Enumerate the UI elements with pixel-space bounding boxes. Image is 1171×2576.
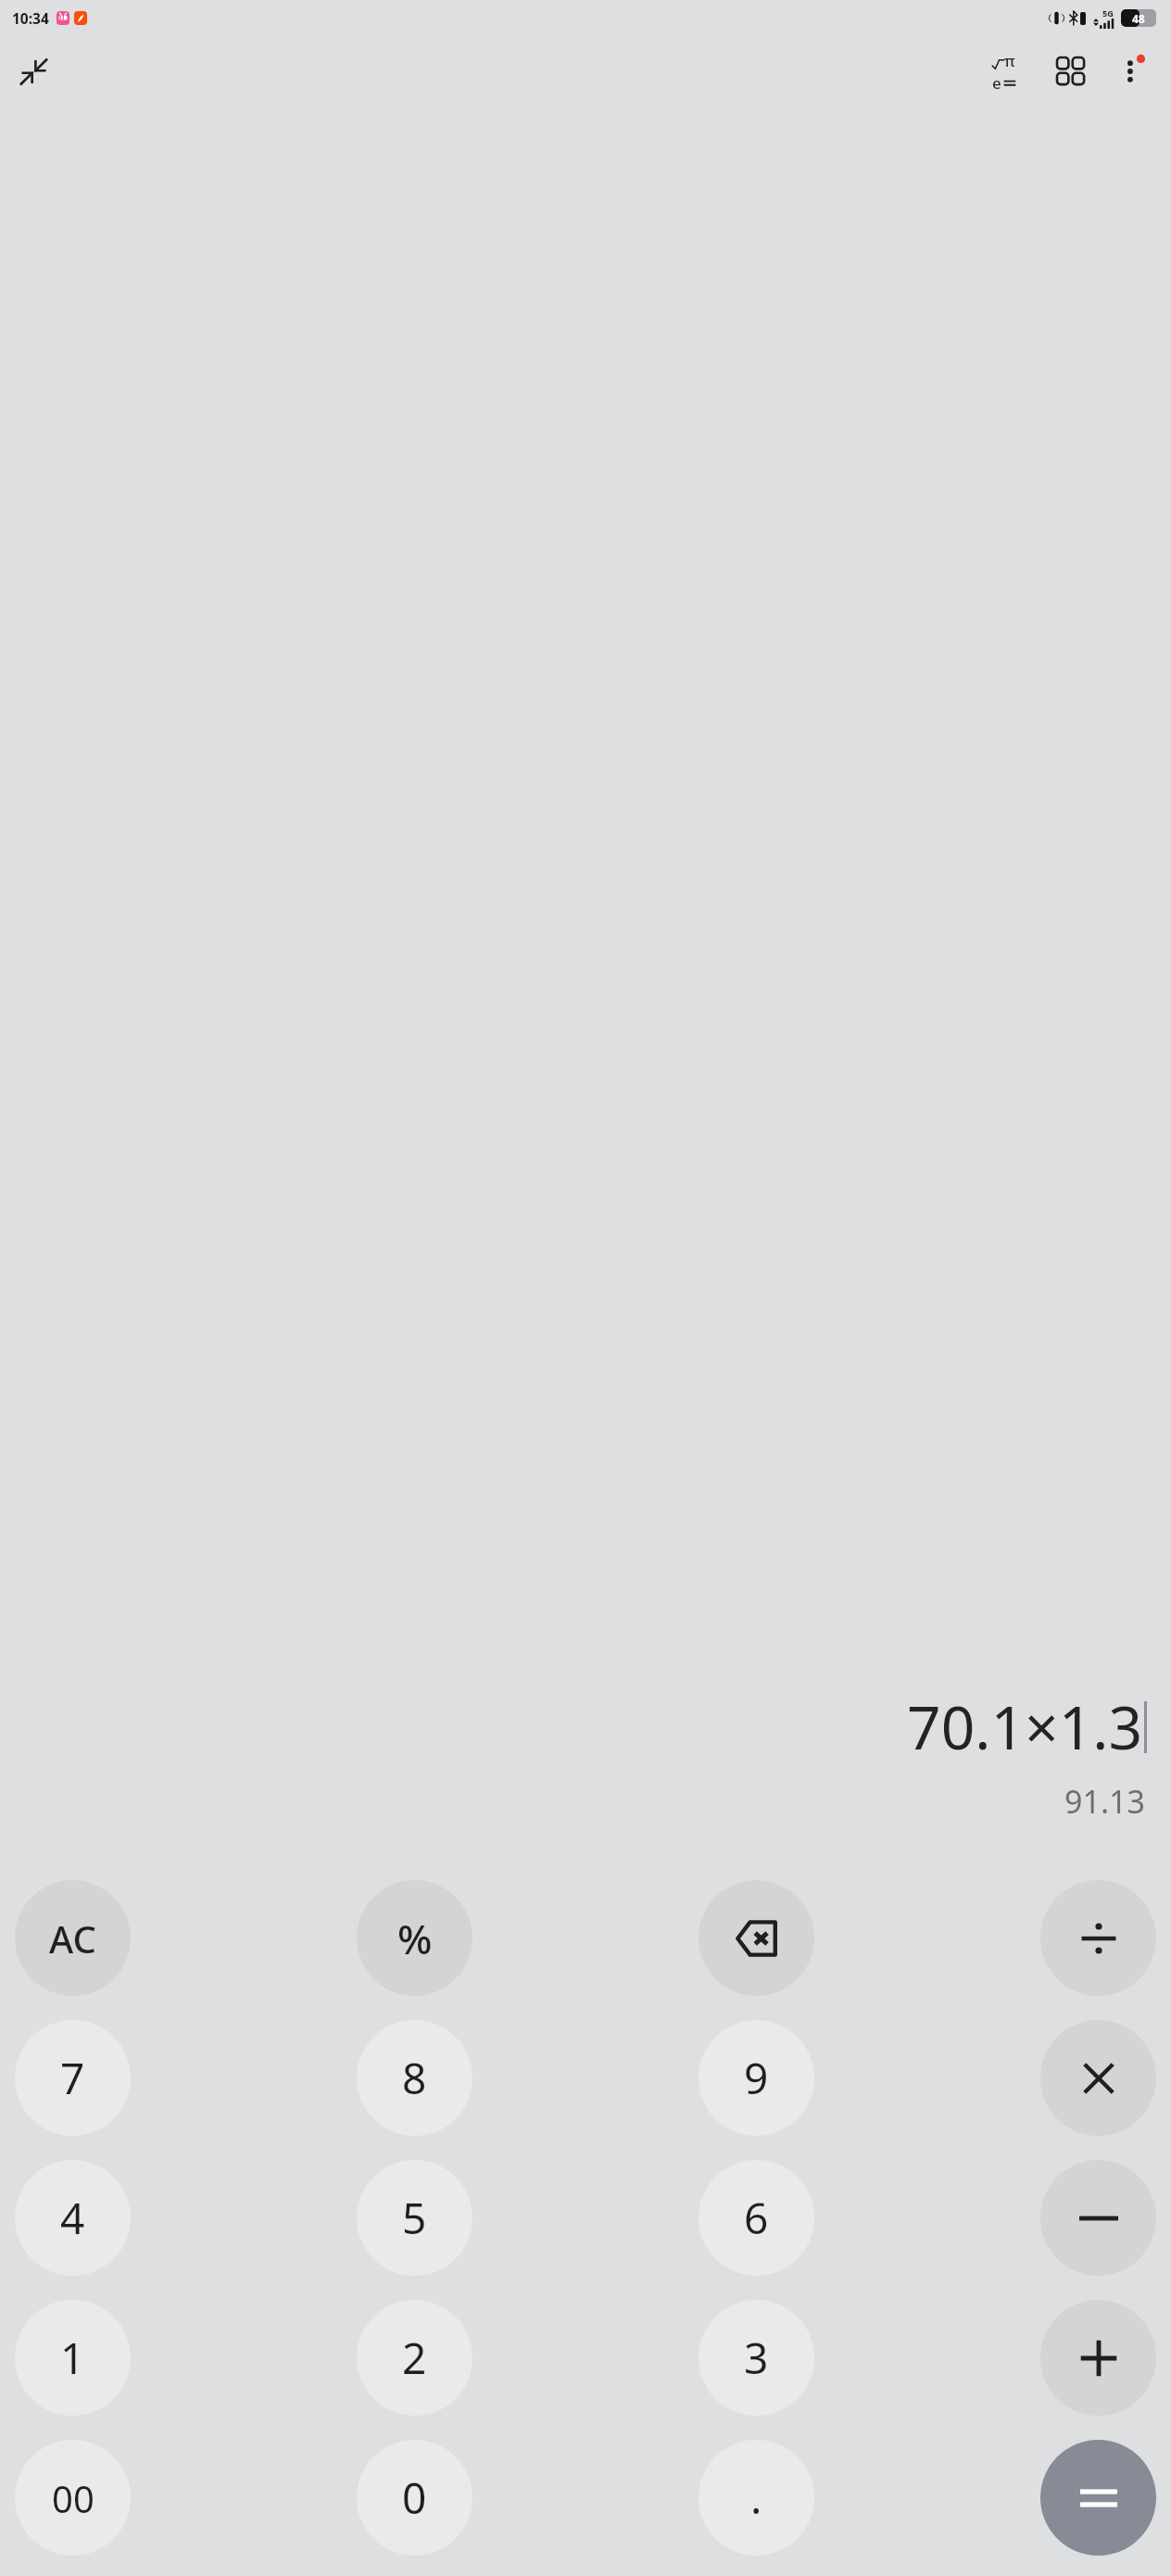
button[interactable]: Scientific mode [976, 44, 1032, 99]
button[interactable]: More options [1106, 44, 1162, 99]
staticText: 48 [1132, 11, 1145, 26]
button[interactable]: Plus [1040, 2300, 1156, 2416]
button[interactable]: 7 [15, 2020, 131, 2136]
button[interactable]: 4 [15, 2160, 131, 2276]
button[interactable]: 0 [357, 2440, 472, 2556]
button[interactable]: 00 [15, 2440, 131, 2556]
button[interactable]: Multiply [1040, 2020, 1156, 2136]
staticText: 2 [402, 2329, 427, 2387]
button[interactable]: History [1043, 44, 1099, 99]
staticText: 9 [744, 2049, 769, 2107]
staticText: 8 [402, 2049, 427, 2107]
button[interactable]: % [357, 1880, 472, 1996]
button[interactable]: 3 [699, 2300, 814, 2416]
staticText: 3 [744, 2329, 769, 2387]
staticText: 1 [60, 2329, 85, 2387]
button[interactable]: 9 [699, 2020, 814, 2136]
staticText: 0 [402, 2469, 427, 2527]
staticText: 70.1×1.3 [907, 1686, 1142, 1767]
button[interactable]: Equals [1040, 2440, 1156, 2556]
button[interactable]: 6 [699, 2160, 814, 2276]
button[interactable]: 8 [357, 2020, 472, 2136]
staticText: % [397, 1911, 433, 1966]
staticText: 5 [402, 2189, 427, 2247]
button[interactable]: Backspace [699, 1880, 814, 1996]
button[interactable]: . [699, 2440, 814, 2556]
staticText: 91.13 [1064, 1780, 1145, 1823]
button[interactable]: Divide [1040, 1880, 1156, 1996]
staticText: 4 [60, 2189, 85, 2247]
staticText: 00 [52, 2473, 94, 2523]
button[interactable]: 5 [357, 2160, 472, 2276]
staticText: 10:34 [12, 8, 49, 28]
staticText: AC [49, 1913, 96, 1964]
button[interactable]: AC [15, 1880, 131, 1996]
staticText: 5G [1102, 7, 1114, 19]
staticText: 6 [744, 2189, 769, 2247]
button[interactable]: 1 [15, 2300, 131, 2416]
button[interactable]: 2 [357, 2300, 472, 2416]
staticText: e [992, 72, 1001, 94]
staticText: . [750, 2469, 762, 2527]
button[interactable]: Minus [1040, 2160, 1156, 2276]
staticText: 7 [60, 2049, 85, 2107]
staticText: π [1004, 50, 1015, 71]
button[interactable]: Collapse [7, 45, 59, 97]
